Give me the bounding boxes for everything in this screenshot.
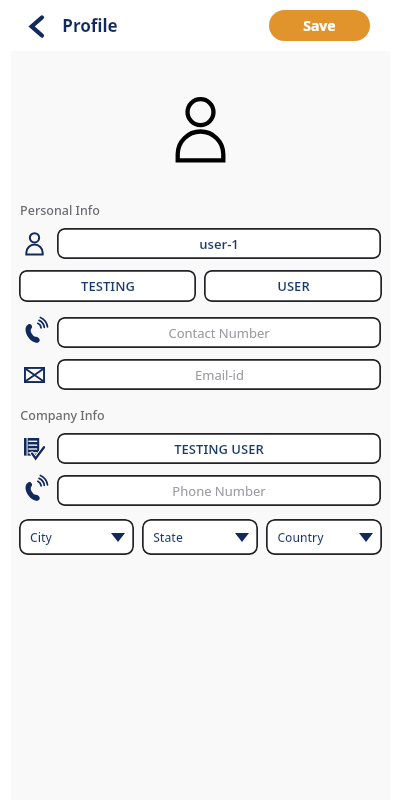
staticText: State [153, 529, 183, 545]
staticText: Profile [62, 14, 118, 37]
staticText: Company Info [20, 407, 105, 424]
button[interactable]: Back [22, 11, 52, 41]
button[interactable]: Save [269, 10, 370, 41]
button[interactable]: TESTING USER [57, 433, 381, 464]
staticText: Phone Number [172, 482, 266, 500]
button[interactable]: TESTING [19, 270, 196, 302]
button[interactable]: USER [204, 270, 382, 302]
button[interactable]: Country [266, 519, 382, 555]
staticText: City [30, 529, 52, 545]
button[interactable]: Phone Number [57, 475, 381, 506]
button[interactable]: Email-id [57, 359, 381, 390]
staticText: Contact Number [168, 324, 270, 342]
staticText: Save [303, 16, 336, 35]
button[interactable]: City [19, 519, 134, 555]
staticText: TESTING [81, 277, 135, 295]
staticText: USER [277, 277, 310, 295]
staticText: TESTING USER [174, 440, 264, 458]
staticText: Email-id [195, 366, 244, 384]
button[interactable]: user-1 [57, 228, 381, 259]
staticText: user-1 [199, 235, 239, 253]
staticText: Country [277, 529, 324, 545]
button[interactable]: State [142, 519, 258, 555]
staticText: Personal Info [20, 202, 100, 219]
button[interactable]: Contact Number [57, 317, 381, 348]
